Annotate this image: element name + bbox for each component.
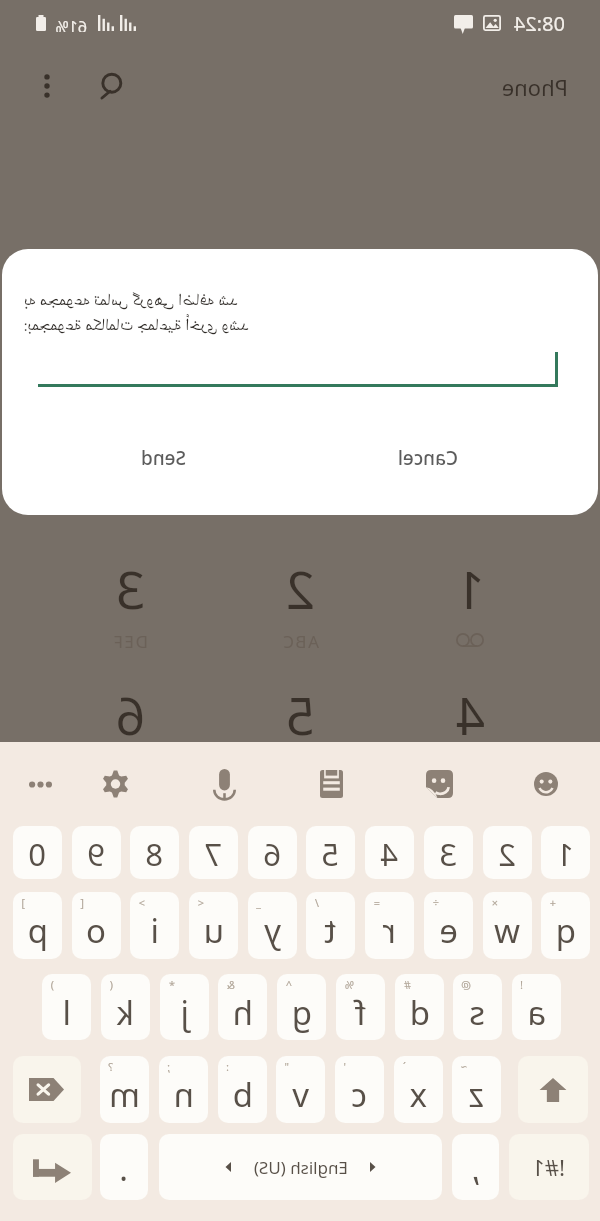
staticText: به مجموعه تماس گروهی اضافه شد بمجموعة مك… xyxy=(24,287,544,345)
button[interactable]: p xyxy=(13,892,62,959)
button[interactable]: Backspace xyxy=(13,1056,81,1123)
staticText: . xyxy=(119,1146,128,1191)
staticText: m xyxy=(109,1072,140,1117)
button[interactable]: More options xyxy=(23,62,71,110)
button[interactable]: a xyxy=(512,974,561,1040)
staticText: f xyxy=(354,990,366,1035)
button[interactable]: Clipboard xyxy=(310,762,354,806)
staticText: 3 xyxy=(439,833,457,875)
staticText: r xyxy=(382,908,396,953)
staticText: ( xyxy=(109,977,113,992)
staticText: + xyxy=(549,895,556,910)
button[interactable]: 2 xyxy=(255,554,345,614)
staticText: @ xyxy=(461,977,471,992)
button[interactable]: g xyxy=(277,974,326,1040)
staticText: i xyxy=(150,908,159,953)
button[interactable]: q xyxy=(541,892,590,959)
button[interactable]: 6 xyxy=(248,826,297,879)
button[interactable]: . xyxy=(100,1134,148,1200)
button[interactable]: , xyxy=(452,1134,499,1200)
button[interactable]: 3 xyxy=(424,826,473,879)
staticText: e xyxy=(439,908,458,953)
button[interactable]: More options xyxy=(19,762,63,806)
staticText: u xyxy=(203,908,224,953)
button[interactable]: 4 xyxy=(365,826,414,879)
button[interactable]: 5 xyxy=(306,826,355,879)
button[interactable]: y xyxy=(248,892,297,959)
staticText: t xyxy=(324,908,336,953)
staticText: c xyxy=(351,1072,367,1117)
button[interactable]: v xyxy=(276,1056,325,1123)
staticText: [ xyxy=(80,895,84,910)
button[interactable]: j xyxy=(160,974,209,1040)
button[interactable]: Stickers xyxy=(418,762,462,806)
button[interactable]: r xyxy=(365,892,414,959)
button[interactable]: Enter xyxy=(13,1134,92,1200)
button[interactable]: b xyxy=(218,1056,267,1123)
staticText: ; xyxy=(167,1059,170,1074)
button[interactable]: Emoji xyxy=(524,762,568,806)
button[interactable]: Voice input xyxy=(203,762,247,806)
staticText: g xyxy=(291,990,312,1035)
button[interactable]: Send xyxy=(128,437,198,479)
button[interactable]: 6 xyxy=(85,680,175,740)
button[interactable]: Cancel xyxy=(386,437,470,479)
button[interactable]: 7 xyxy=(189,826,238,879)
staticText: n xyxy=(173,1072,194,1117)
staticText: English (US) xyxy=(253,1156,348,1179)
button[interactable]: h xyxy=(218,974,267,1040)
staticText: 5 xyxy=(321,833,339,875)
button[interactable]: 8 xyxy=(130,826,179,879)
staticText: k xyxy=(116,990,134,1035)
button[interactable]: t xyxy=(306,892,355,959)
button[interactable]: i xyxy=(130,892,179,959)
button[interactable]: d xyxy=(395,974,444,1040)
button[interactable]: 9 xyxy=(72,826,121,879)
button[interactable]: 3 xyxy=(85,554,175,614)
button[interactable]: 1 xyxy=(425,554,515,614)
button[interactable]: k xyxy=(101,974,150,1040)
button[interactable]: e xyxy=(424,892,473,959)
button[interactable]: 2 xyxy=(483,826,532,879)
button[interactable]: o xyxy=(72,892,121,959)
staticText: 7 xyxy=(204,833,222,875)
staticText: j xyxy=(180,990,189,1035)
button[interactable]: 5 xyxy=(255,680,345,740)
staticText: Phone xyxy=(501,72,568,102)
staticText: 2 xyxy=(285,554,315,614)
staticText: 4 xyxy=(380,833,398,875)
button[interactable]: m xyxy=(100,1056,149,1123)
staticText: ÷ xyxy=(432,895,439,910)
button[interactable]: 0 xyxy=(13,826,62,879)
staticText: 4 xyxy=(455,680,485,740)
staticText: × xyxy=(491,895,498,910)
button[interactable]: u xyxy=(189,892,238,959)
button[interactable]: Search xyxy=(86,61,134,109)
button[interactable]: !#1 xyxy=(509,1134,589,1200)
button[interactable]: f xyxy=(336,974,385,1040)
button[interactable]: n xyxy=(159,1056,208,1123)
button[interactable]: 4 xyxy=(425,680,515,740)
button[interactable]: English (US) xyxy=(159,1134,442,1200)
staticText: 1 xyxy=(455,554,485,614)
staticText: s xyxy=(469,990,485,1035)
button[interactable]: Settings xyxy=(94,762,138,806)
button[interactable]: 1 xyxy=(541,826,590,879)
button[interactable]: x xyxy=(394,1056,443,1123)
button[interactable]: z xyxy=(452,1056,501,1123)
button[interactable]: w xyxy=(483,892,532,959)
button[interactable]: c xyxy=(335,1056,384,1123)
staticText: < xyxy=(197,895,204,910)
staticText: 8 xyxy=(145,833,163,875)
staticText: ~ xyxy=(460,1059,467,1074)
staticText: ) xyxy=(50,977,54,992)
button[interactable]: Shift xyxy=(518,1056,588,1123)
button[interactable]: s xyxy=(453,974,502,1040)
staticText: * xyxy=(168,977,175,992)
staticText: ABC xyxy=(281,630,319,652)
staticText: w xyxy=(494,908,520,953)
button[interactable]: l xyxy=(42,974,91,1040)
staticText: ! xyxy=(520,977,523,992)
staticText: 6 xyxy=(115,680,145,740)
button[interactable]: Phone xyxy=(494,68,576,106)
